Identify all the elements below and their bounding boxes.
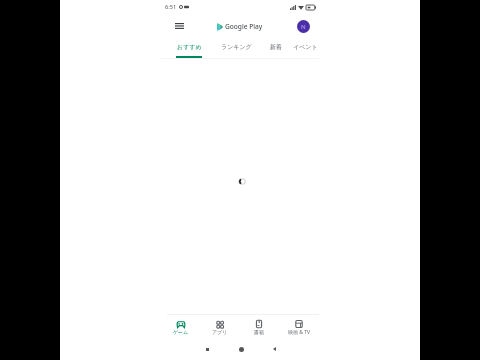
button[interactable]: Account <box>295 18 311 34</box>
button[interactable]: おすすめ <box>167 38 211 58</box>
button[interactable]: Menu <box>172 19 186 33</box>
button[interactable]: 映画 & TV <box>279 315 319 340</box>
staticText: ゲーム <box>173 329 189 335</box>
staticText: Google Play <box>225 22 263 31</box>
button[interactable]: アプリ <box>200 315 239 340</box>
staticText: おすすめ <box>177 43 202 51</box>
button[interactable]: Home <box>232 342 250 356</box>
staticText: 書籍 <box>254 329 264 335</box>
button[interactable]: Recents <box>198 342 216 356</box>
staticText: アプリ <box>212 329 228 335</box>
staticText: N <box>301 23 306 31</box>
button[interactable]: ランキング <box>211 38 261 58</box>
staticText: イベント <box>293 43 318 51</box>
button[interactable]: イベント <box>291 38 319 58</box>
staticText: ランキング <box>221 43 252 51</box>
button[interactable]: 新着 <box>261 38 291 58</box>
staticText: 新着 <box>270 43 282 51</box>
staticText: 映画 & TV <box>288 329 311 336</box>
button[interactable]: Back <box>265 342 283 356</box>
staticText: 6:51 <box>165 3 177 11</box>
button[interactable]: ゲーム <box>161 315 200 340</box>
button[interactable]: 書籍 <box>239 315 279 340</box>
